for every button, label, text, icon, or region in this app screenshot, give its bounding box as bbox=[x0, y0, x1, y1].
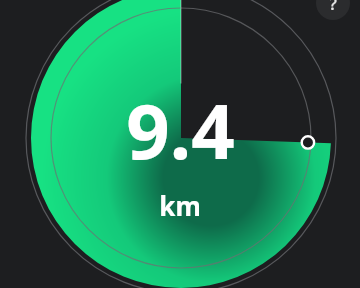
staticText: 9.4 bbox=[126, 78, 235, 182]
staticText: ? bbox=[329, 0, 337, 15]
button[interactable]: Help bbox=[316, 0, 350, 20]
staticText: km bbox=[159, 188, 201, 223]
